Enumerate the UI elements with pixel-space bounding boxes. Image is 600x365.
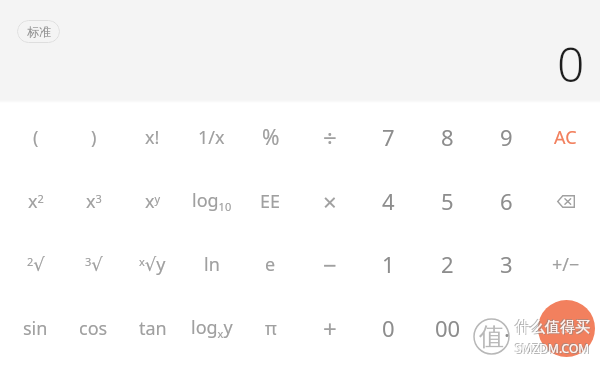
staticText: ×	[323, 185, 337, 218]
button[interactable]: ÷	[300, 105, 359, 169]
button[interactable]: log10	[182, 169, 241, 233]
staticText: =	[560, 314, 573, 344]
button[interactable]: AC	[536, 105, 595, 169]
staticText: .	[504, 313, 510, 343]
staticText: +/−	[552, 252, 580, 277]
button[interactable]: sin	[6, 296, 65, 360]
button[interactable]: .	[477, 296, 536, 360]
staticText: 2	[441, 249, 454, 279]
button[interactable]: 1/x	[182, 105, 241, 169]
button[interactable]: 0	[359, 296, 418, 360]
staticText: 00	[435, 313, 461, 343]
staticText: ln	[204, 252, 220, 277]
staticText: 8	[441, 122, 454, 152]
button[interactable]: x√y	[123, 232, 182, 296]
button[interactable]: 2√	[6, 232, 65, 296]
staticText: 3√	[85, 254, 103, 275]
button[interactable]: 3	[477, 232, 536, 296]
staticText: AC	[554, 125, 577, 150]
staticText: x3	[86, 189, 102, 214]
staticText: 2√	[27, 254, 45, 275]
button[interactable]: 6	[477, 169, 536, 233]
staticText: SMZDM.COM	[515, 340, 590, 356]
staticText: π	[265, 316, 277, 341]
staticText: 9	[500, 122, 513, 152]
button[interactable]: Backspace	[536, 169, 595, 233]
staticText: EE	[260, 189, 281, 214]
staticText: 什么值得买	[514, 317, 589, 336]
staticText: 3	[500, 249, 513, 279]
button[interactable]: 4	[359, 169, 418, 233]
button[interactable]: 7	[359, 105, 418, 169]
staticText: e	[265, 252, 276, 277]
button[interactable]: (	[6, 105, 65, 169]
button[interactable]: 9	[477, 105, 536, 169]
staticText: 0	[382, 313, 395, 343]
staticText: −	[323, 248, 337, 281]
staticText: 1	[382, 249, 395, 279]
button[interactable]: )	[64, 105, 123, 169]
staticText: tan	[139, 316, 167, 341]
staticText: 什么值得买	[515, 318, 590, 337]
staticText: SMZDM.COM	[516, 341, 591, 357]
button[interactable]: %	[241, 105, 300, 169]
staticText: xy	[145, 189, 161, 214]
button[interactable]: 标准	[17, 20, 60, 43]
staticText: ÷	[323, 121, 337, 154]
staticText: 7	[382, 122, 395, 152]
button[interactable]: logxy	[182, 296, 241, 360]
button[interactable]: 3√	[64, 232, 123, 296]
staticText: 值	[479, 321, 504, 352]
button[interactable]: 2	[418, 232, 477, 296]
staticText: x√y	[139, 252, 166, 277]
staticText: x!	[145, 125, 160, 150]
staticText: +	[323, 312, 337, 345]
button[interactable]: xy	[123, 169, 182, 233]
staticText: (	[33, 125, 39, 150]
button[interactable]: −	[300, 232, 359, 296]
button[interactable]: 5	[418, 169, 477, 233]
staticText: 4	[382, 186, 395, 216]
staticText: 什么值得买	[516, 319, 591, 338]
button[interactable]: 00	[418, 296, 477, 360]
button[interactable]: +	[300, 296, 359, 360]
button[interactable]: x3	[64, 169, 123, 233]
staticText: sin	[23, 316, 48, 341]
button[interactable]: 1	[359, 232, 418, 296]
staticText: %	[262, 123, 280, 152]
button[interactable]: Equals	[538, 300, 595, 357]
button[interactable]: 8	[418, 105, 477, 169]
staticText: 0	[557, 31, 585, 96]
button[interactable]: e	[241, 232, 300, 296]
staticText: logxy	[191, 315, 233, 341]
button[interactable]: ln	[182, 232, 241, 296]
staticText: )	[91, 125, 97, 150]
button[interactable]: x2	[6, 169, 65, 233]
staticText: 标准	[27, 24, 51, 39]
button[interactable]: +/−	[536, 232, 595, 296]
staticText: SMZDM.COM	[514, 339, 589, 355]
button[interactable]: tan	[123, 296, 182, 360]
button[interactable]: ×	[300, 169, 359, 233]
button[interactable]: x!	[123, 105, 182, 169]
button[interactable]: cos	[64, 296, 123, 360]
staticText: 5	[441, 186, 454, 216]
staticText: x2	[28, 189, 44, 214]
staticText: 1/x	[198, 125, 225, 150]
staticText: log10	[192, 188, 232, 214]
button[interactable]: π	[241, 296, 300, 360]
button[interactable]: EE	[241, 169, 300, 233]
staticText: 6	[500, 186, 513, 216]
staticText: cos	[79, 316, 108, 341]
